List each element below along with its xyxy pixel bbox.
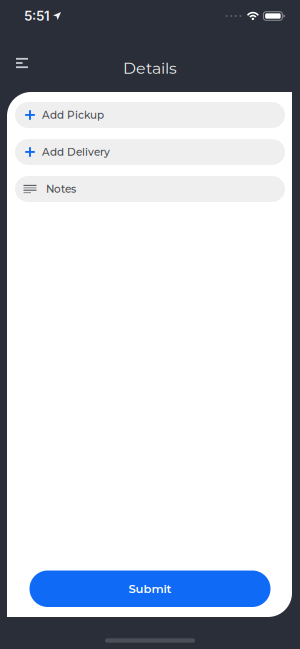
staticText: Add Pickup: [42, 109, 104, 121]
button[interactable]: Notes: [15, 176, 285, 202]
button[interactable]: Menu: [0, 56, 28, 68]
staticText: 5:51: [24, 8, 50, 24]
staticText: Submit: [128, 582, 171, 596]
button[interactable]: Add Pickup: [15, 102, 285, 128]
button[interactable]: Submit: [29, 570, 270, 607]
staticText: Details: [123, 58, 177, 78]
button[interactable]: Add Delivery: [15, 139, 285, 165]
staticText: Notes: [46, 183, 76, 195]
staticText: Add Delivery: [42, 146, 110, 158]
